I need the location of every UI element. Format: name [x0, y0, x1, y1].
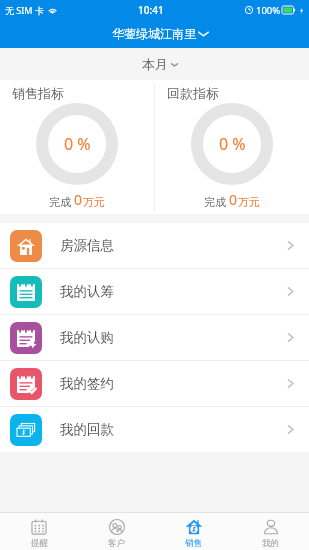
button[interactable]: 我的回款	[0, 407, 309, 452]
button[interactable]: 我的签约	[0, 361, 309, 406]
staticText: 我的	[262, 538, 279, 549]
staticText: 我的认购	[60, 329, 114, 346]
staticText: 万元	[238, 195, 260, 209]
staticText: 0	[229, 190, 238, 209]
button[interactable]: 我的认购	[0, 315, 309, 360]
staticText: 销售	[185, 538, 202, 549]
staticText: 完成	[204, 194, 229, 209]
staticText: 0 %	[64, 133, 91, 155]
button[interactable]: 我的认筹	[0, 269, 309, 314]
staticText: 0 %	[219, 133, 246, 155]
staticText: 我的认筹	[60, 283, 114, 300]
button[interactable]: 房源信息	[0, 223, 309, 268]
staticText: 0	[74, 190, 83, 209]
staticText: 我的签约	[60, 375, 114, 392]
staticText: 10:41	[138, 3, 164, 17]
button[interactable]: 销售	[155, 513, 232, 550]
other: Switch project	[198, 28, 209, 39]
button[interactable]: 提醒	[0, 513, 78, 550]
staticText: 我的回款	[60, 421, 114, 438]
staticText: 万元	[83, 195, 105, 209]
staticText: 销售指标	[12, 85, 64, 101]
staticText: 100%	[256, 4, 281, 17]
staticText: 完成	[49, 194, 74, 209]
staticText: 无 SIM 卡	[5, 4, 44, 16]
staticText: 华蓥绿城江南里	[112, 26, 196, 41]
staticText: 房源信息	[60, 237, 114, 254]
staticText: 本月	[142, 56, 168, 72]
button[interactable]: 本月	[0, 48, 309, 80]
button[interactable]: 我的	[232, 513, 309, 550]
staticText: 回款指标	[167, 85, 219, 101]
staticText: 客户	[108, 538, 125, 549]
staticText: 提醒	[31, 538, 48, 549]
button[interactable]: 客户	[78, 513, 155, 550]
